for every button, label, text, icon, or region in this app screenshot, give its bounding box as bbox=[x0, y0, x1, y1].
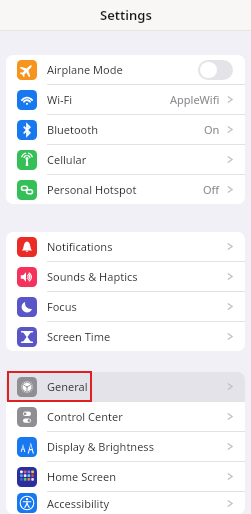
button[interactable]: Bluetooth bbox=[6, 115, 245, 144]
button[interactable]: Home Screen bbox=[6, 462, 245, 491]
staticText: Off bbox=[203, 182, 220, 197]
button[interactable]: Focus bbox=[6, 292, 245, 321]
staticText: Bluetooth bbox=[47, 122, 99, 137]
staticText: Settings bbox=[100, 6, 152, 24]
staticText: Wi-Fi bbox=[47, 92, 73, 107]
staticText: Accessibility bbox=[47, 496, 110, 511]
button[interactable]: Cellular bbox=[6, 145, 245, 174]
button[interactable]: Control Center bbox=[6, 402, 245, 431]
button[interactable]: Personal Hotspot bbox=[6, 175, 245, 204]
staticText: Focus bbox=[47, 299, 77, 314]
button[interactable]: General bbox=[6, 372, 245, 401]
button[interactable]: Wi-Fi bbox=[6, 85, 245, 114]
button[interactable]: Display & Brightness bbox=[6, 432, 245, 461]
staticText: Screen Time bbox=[47, 329, 111, 344]
staticText: Airplane Mode bbox=[47, 62, 123, 77]
staticText: Control Center bbox=[47, 409, 123, 424]
button[interactable]: Sounds & Haptics bbox=[6, 262, 245, 291]
button[interactable]: Notifications bbox=[6, 232, 245, 261]
staticText: General bbox=[47, 379, 88, 394]
button[interactable]: Screen Time bbox=[6, 322, 245, 351]
button[interactable]: Airplane Mode bbox=[6, 55, 245, 84]
staticText: Cellular bbox=[47, 152, 87, 167]
staticText: Notifications bbox=[47, 239, 113, 254]
staticText: Personal Hotspot bbox=[47, 182, 137, 197]
button[interactable]: Accessibility bbox=[6, 492, 245, 514]
staticText: On bbox=[204, 122, 220, 137]
staticText: Display & Brightness bbox=[47, 439, 154, 454]
button[interactable]: Airplane Mode toggle bbox=[198, 60, 233, 80]
staticText: AppleWifi bbox=[170, 92, 220, 107]
staticText: Home Screen bbox=[47, 469, 117, 484]
staticText: Sounds & Haptics bbox=[47, 269, 138, 284]
